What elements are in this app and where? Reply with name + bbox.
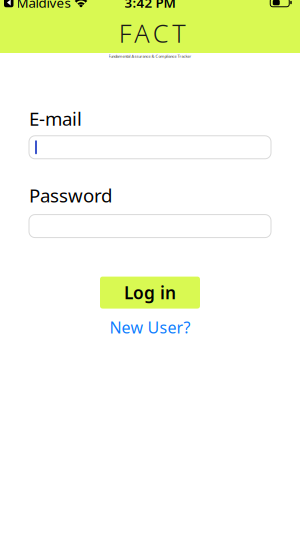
staticText: Fundamental Assurance & Compliance Track… — [108, 54, 191, 59]
staticText: FACT — [119, 16, 185, 50]
staticText: Log in — [124, 281, 176, 304]
staticText: E-mail — [29, 106, 82, 131]
staticText: 3:42 PM — [124, 0, 175, 11]
button[interactable]: Log in — [100, 277, 200, 309]
button[interactable] — [29, 136, 271, 159]
staticText: Password — [29, 183, 112, 208]
button[interactable]: New User? — [109, 317, 190, 338]
staticText: New User? — [109, 317, 190, 338]
button[interactable] — [29, 215, 271, 238]
staticText: Maldives — [16, 0, 70, 11]
